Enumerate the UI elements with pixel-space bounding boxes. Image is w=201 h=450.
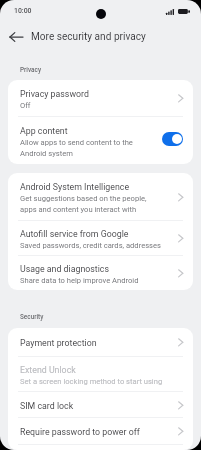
staticText: SIM card lock [20,399,74,411]
staticText: Require password to power off [20,425,140,437]
staticText: Share data to help improve Android [20,274,139,285]
button[interactable]: Back [5,26,27,48]
staticText: Privacy [20,66,42,74]
button[interactable]: Autofill service from Google [8,221,193,255]
staticText: Security [20,313,44,321]
staticText: Usage and diagnostics [20,262,110,274]
button[interactable]: Require password to power off [8,418,193,444]
staticText: Set a screen locking method to start usi… [20,375,163,386]
button[interactable]: Extend Unlock [8,357,193,391]
button[interactable]: SIM card lock [8,392,193,417]
staticText: Allow apps to send content to the Androi… [20,136,133,158]
staticText: Payment protection [20,336,97,348]
staticText: Android System Intelligence [20,180,130,192]
staticText: App content [20,124,68,136]
button[interactable]: App content toggle, on [162,132,183,146]
staticText: 10:00 [14,7,32,15]
staticText: More security and privacy [31,31,146,43]
button[interactable]: Encryption and credentials [8,445,193,450]
staticText: Off [20,99,31,110]
button[interactable]: Privacy password [8,80,193,116]
staticText: Privacy password [20,87,89,99]
button[interactable]: Usage and diagnostics [8,256,193,290]
staticText: Autofill service from Google [20,227,129,239]
button[interactable]: App content [8,117,193,164]
staticText: Extend Unlock [20,363,76,375]
staticText: Saved passwords, credit cards, addresses [20,239,161,250]
staticText: Get suggestions based on the people, app… [20,192,147,214]
button[interactable]: Payment protection [8,328,193,356]
button[interactable]: Android System Intelligence [8,173,193,220]
